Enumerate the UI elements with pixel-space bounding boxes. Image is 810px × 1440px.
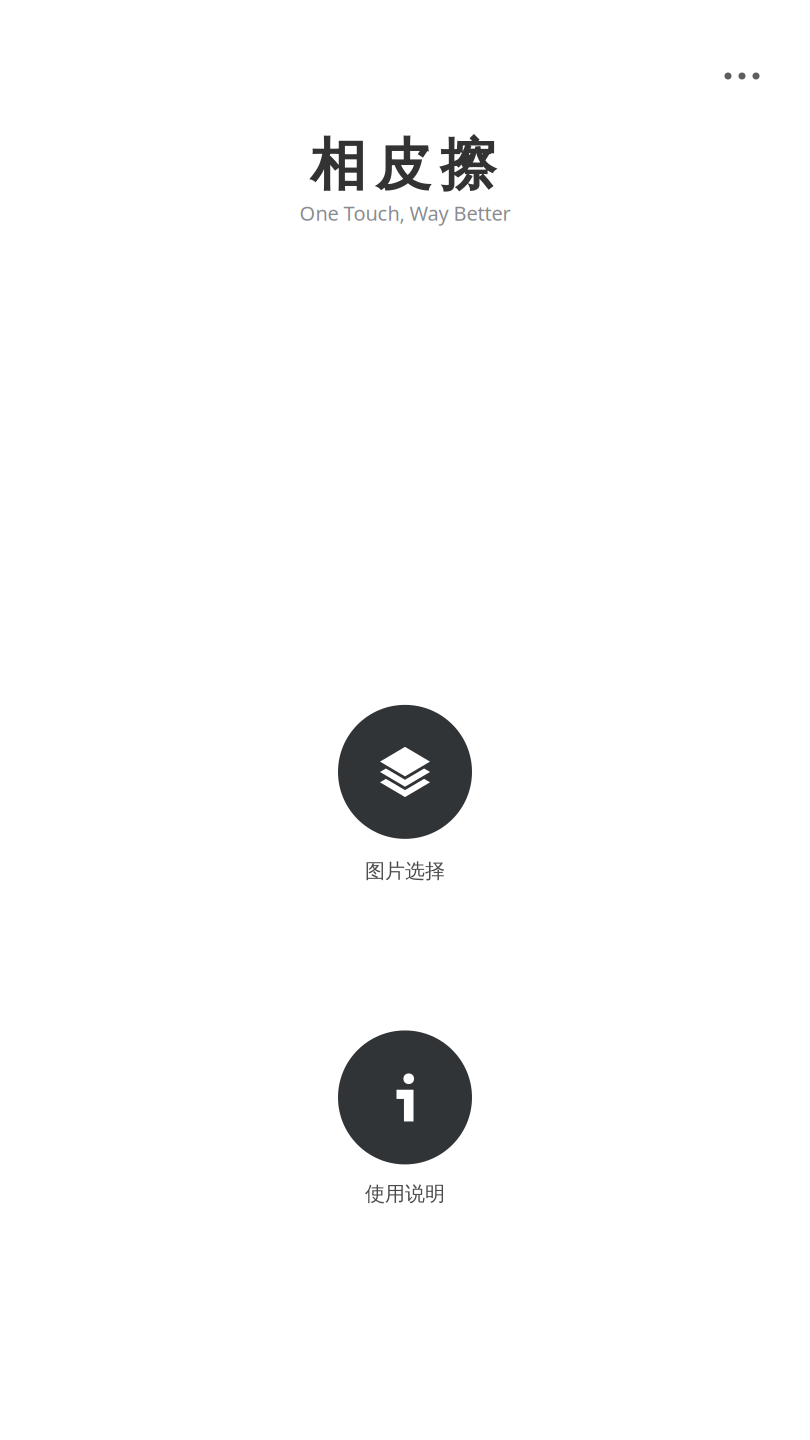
staticText: One Touch, Way Better bbox=[299, 200, 510, 226]
button[interactable]: 使用说明 bbox=[338, 1030, 472, 1206]
staticText: 相皮擦 bbox=[310, 131, 496, 200]
button[interactable]: 图片选择 bbox=[338, 705, 472, 883]
button[interactable]: More options bbox=[700, 46, 784, 106]
staticText: 图片选择 bbox=[365, 859, 445, 883]
staticText: 使用说明 bbox=[365, 1181, 445, 1206]
